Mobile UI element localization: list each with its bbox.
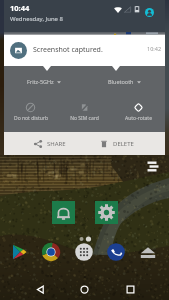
staticText: Wednesday, June 8 <box>10 15 63 23</box>
button[interactable]: Bluetooth <box>84 78 165 85</box>
staticText: SHARE <box>47 140 66 148</box>
button[interactable]: Account <box>145 8 154 17</box>
button[interactable]: Phone <box>106 242 126 262</box>
button[interactable]: DELETE <box>100 140 134 148</box>
staticText: Do not disturb <box>14 115 48 122</box>
button[interactable]: Play Store <box>9 242 29 262</box>
staticText: DELETE <box>113 140 134 148</box>
button[interactable]: Back <box>32 278 48 300</box>
staticText: 10:42 <box>147 45 162 52</box>
button[interactable]: Widget <box>146 160 162 173</box>
staticText: Auto-rotate <box>125 115 152 122</box>
button[interactable]: No SIM card <box>57 102 111 122</box>
staticText: Screenshot captured. <box>33 45 103 55</box>
button[interactable]: Home <box>76 278 92 300</box>
button[interactable]: Clock <box>52 201 75 224</box>
button[interactable]: Eject <box>138 242 158 262</box>
button[interactable]: Recents <box>122 278 138 300</box>
button[interactable]: Do not disturb <box>4 102 57 122</box>
button[interactable]: Auto-rotate <box>111 102 165 122</box>
button[interactable]: Fritz-5GHz <box>4 78 84 85</box>
button[interactable]: SHARE <box>34 140 66 148</box>
staticText: Fritz-5GHz <box>27 78 54 85</box>
staticText: No SIM card <box>70 115 99 122</box>
button[interactable]: Apps <box>74 242 94 262</box>
staticText: 10:44 <box>10 3 30 13</box>
button[interactable]: Settings <box>95 201 118 224</box>
staticText: Bluetooth <box>108 78 134 85</box>
button[interactable]: Chrome <box>41 242 61 262</box>
